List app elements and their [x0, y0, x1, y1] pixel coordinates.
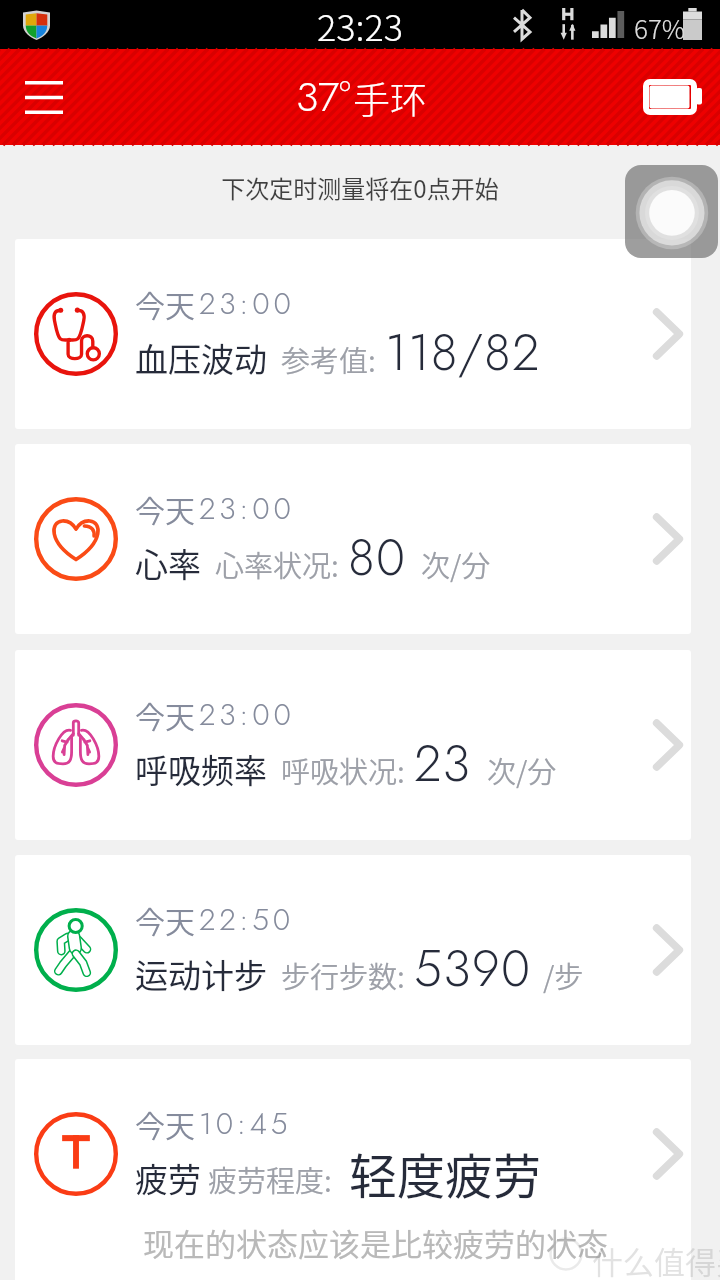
staticText: 血压波动 — [135, 334, 267, 382]
staticText: 什么值得买 — [592, 1238, 720, 1280]
staticText: /步 — [543, 954, 584, 996]
staticText: 今天 — [135, 898, 195, 941]
staticText: 步行步数: — [281, 954, 405, 996]
staticText: 今天 — [135, 487, 195, 530]
staticText: 今天 — [135, 693, 195, 736]
button[interactable]: Battery — [630, 49, 720, 145]
staticText: 疲劳 — [135, 1154, 201, 1202]
staticText: 手环 — [353, 71, 427, 125]
staticText: 疲劳程度: — [208, 1158, 332, 1200]
button[interactable]: 今天 — [15, 239, 691, 429]
staticText: 22:50 — [199, 898, 295, 941]
staticText: 今天 — [135, 282, 195, 325]
staticText: 23:00 — [199, 487, 295, 530]
staticText: 运动计步 — [135, 950, 267, 998]
staticText: 23:00 — [199, 282, 295, 325]
button[interactable]: 今天 — [15, 1059, 691, 1280]
staticText: 今天 — [135, 1102, 195, 1145]
staticText: 67% — [634, 9, 686, 47]
staticText: 轻度疲劳 — [349, 1138, 542, 1208]
staticText: 23 — [414, 727, 472, 799]
staticText: 呼吸频率 — [135, 745, 267, 793]
staticText: 下次定时测量将在0点开始 — [0, 170, 720, 205]
button[interactable]: 今天 — [15, 855, 691, 1045]
staticText: 37° — [296, 67, 351, 126]
staticText: 呼吸状况: — [281, 749, 405, 791]
staticText: 现在的状态应该是比较疲劳的状态 — [143, 1220, 608, 1265]
staticText: 5390 — [414, 932, 532, 1004]
button[interactable]: Assistive touch — [625, 165, 718, 258]
staticText: 23:23 — [317, 0, 404, 48]
staticText: 80 — [348, 521, 407, 593]
staticText: 次/分 — [421, 543, 491, 585]
staticText: 10:45 — [199, 1102, 292, 1145]
button[interactable]: 今天 — [15, 444, 691, 634]
button[interactable]: Menu — [1, 49, 85, 145]
button[interactable]: 今天 — [15, 650, 691, 840]
staticText: 参考值: — [281, 338, 376, 380]
staticText: 心率状况: — [215, 543, 339, 585]
staticText: 心率 — [135, 539, 201, 587]
staticText: 次/分 — [487, 749, 557, 791]
staticText: 118/82 — [385, 316, 541, 388]
staticText: 23:00 — [199, 693, 295, 736]
